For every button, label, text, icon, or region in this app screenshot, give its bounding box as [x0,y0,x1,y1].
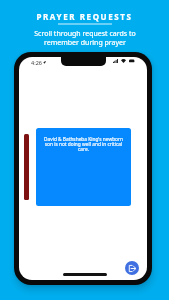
staticText: 4:26 [31,59,42,66]
staticText: PRAYER REQUESTS [36,11,133,22]
staticText: Scroll through request cards to remember… [34,29,136,47]
button[interactable] [24,134,29,200]
button[interactable]: David & Bathsheba King's newborn son is … [36,128,131,206]
button[interactable]: New prayer request [125,261,139,275]
staticText: David & Bathsheba King's newborn son is … [43,136,124,152]
